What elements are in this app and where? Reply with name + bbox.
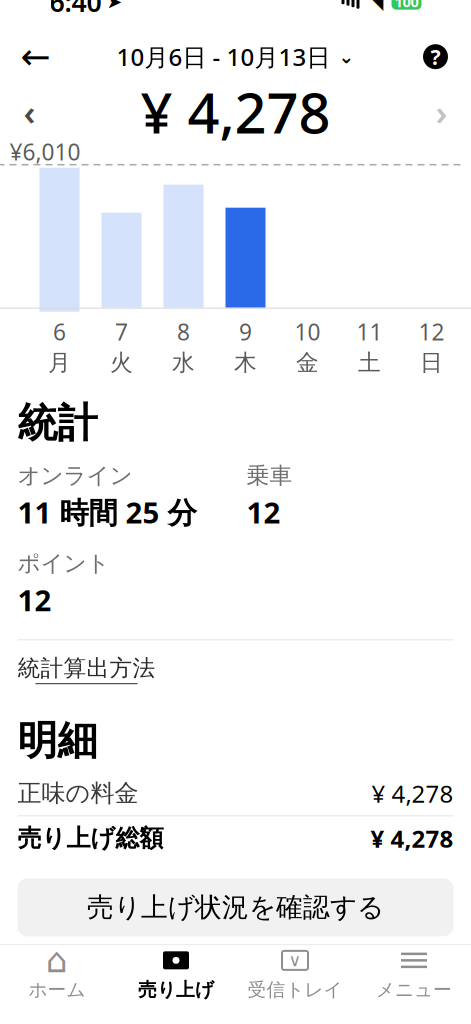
staticText: メニュー (376, 978, 452, 1001)
staticText: ∨ (288, 950, 301, 970)
button[interactable]: 10月6日 - 10月13日 (108, 35, 362, 79)
staticText: 乗車 (246, 462, 292, 490)
staticText: 8 (177, 317, 190, 347)
staticText: 11 時間 25 分 (17, 493, 196, 532)
button[interactable]: 次の週 (421, 89, 461, 135)
staticText: ➤ (106, 0, 122, 12)
staticText: 明細 (17, 716, 97, 765)
button[interactable]: ⌂ (0, 946, 116, 1002)
staticText: ⌄ (338, 46, 354, 67)
staticText: ← (20, 36, 50, 77)
staticText: 100 (394, 0, 418, 11)
staticText: ¥ 4,278 (371, 777, 453, 809)
staticText: ‹ (23, 89, 35, 135)
button[interactable]: メニュー (354, 946, 471, 1002)
staticText: 土 (358, 349, 381, 377)
staticText: ? (430, 42, 440, 71)
staticText: 統計 (17, 399, 97, 448)
staticText: ¥ 4,278 (140, 74, 330, 149)
staticText: ⌂ (46, 941, 68, 980)
staticText: 受信トレイ (247, 978, 342, 1001)
staticText: 正味の料金 (17, 779, 138, 808)
button[interactable]: ∨ (235, 946, 354, 1002)
staticText: 10 (294, 317, 320, 347)
staticText: 月 (48, 349, 71, 377)
staticText: 9 (239, 317, 252, 347)
staticText: オンライン (17, 462, 132, 490)
staticText: 11 (356, 317, 382, 347)
staticText: 金 (296, 349, 319, 377)
staticText: ¥ 4,278 (370, 822, 453, 854)
staticText: 木 (234, 349, 257, 377)
button[interactable]: 売り上げ状況を確認する (17, 878, 453, 936)
staticText: 6 (53, 317, 66, 347)
staticText: 6:40 (49, 0, 101, 19)
staticText: ホーム (28, 978, 85, 1001)
button[interactable]: 前の週 (9, 89, 49, 135)
staticText: 12 (17, 580, 51, 619)
staticText: 日 (420, 349, 443, 377)
button[interactable]: 戻る (13, 35, 57, 79)
staticText: 12 (246, 493, 280, 532)
staticText: 統計算出方法 (17, 654, 155, 682)
staticText: 売り上げ状況を確認する (87, 891, 384, 924)
staticText: 12 (418, 317, 444, 347)
staticText: 売り上げ総額 (17, 824, 163, 853)
staticText: 水 (172, 349, 195, 377)
staticText: ¥6,010 (9, 137, 80, 167)
staticText: 7 (115, 317, 128, 347)
staticText: ポイント (17, 550, 109, 577)
button[interactable]: 統計算出方法 (17, 640, 155, 694)
staticText: 10月6日 - 10月13日 (116, 41, 330, 73)
button[interactable]: 売り上げ (116, 946, 235, 1002)
staticText: ◥ (368, 0, 383, 13)
staticText: › (435, 89, 447, 135)
staticText: 売り上げ (138, 978, 214, 1001)
button[interactable]: ヘルプ (413, 35, 457, 79)
staticText: 火 (110, 349, 133, 377)
